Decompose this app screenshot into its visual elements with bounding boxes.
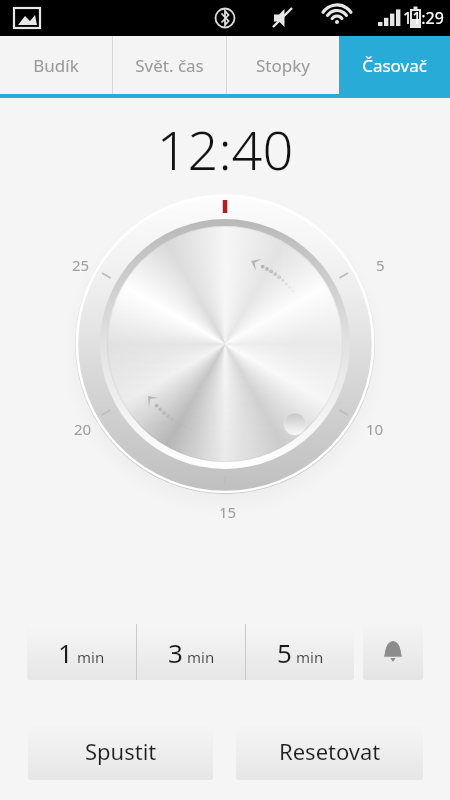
staticText: Časovač <box>362 54 427 77</box>
staticText: Budík <box>33 54 79 77</box>
button[interactable]: Časovač <box>339 36 450 94</box>
staticText: 11:29 <box>403 7 444 29</box>
button[interactable]: Resetovat <box>236 722 423 780</box>
staticText: 25 <box>72 255 90 275</box>
staticText: 10 <box>366 419 384 439</box>
staticText: Stopky <box>256 54 310 77</box>
staticText: Spustit <box>85 736 157 766</box>
button[interactable]: 5 <box>246 624 354 680</box>
staticText: 1 <box>58 635 73 670</box>
button[interactable]: Svět. čas <box>113 36 226 94</box>
staticText: min <box>77 647 105 667</box>
staticText: min <box>187 647 215 667</box>
staticText: 15 <box>219 502 237 522</box>
button[interactable]: Alarm sound <box>363 624 423 680</box>
button[interactable]: Timer dial <box>60 192 390 532</box>
button[interactable]: Stopky <box>227 36 339 94</box>
button[interactable]: 1 <box>27 624 136 680</box>
button[interactable]: 3 <box>137 624 245 680</box>
staticText: Svět. čas <box>135 54 204 77</box>
staticText: 3 <box>168 635 183 670</box>
staticText: 5 <box>277 635 292 670</box>
staticText: Resetovat <box>279 736 381 766</box>
staticText: 12:40 <box>0 112 450 186</box>
staticText: min <box>296 647 324 667</box>
staticText: 20 <box>74 419 92 439</box>
button[interactable]: Budík <box>0 36 112 94</box>
button[interactable]: Spustit <box>28 722 213 780</box>
staticText: 5 <box>376 255 385 275</box>
